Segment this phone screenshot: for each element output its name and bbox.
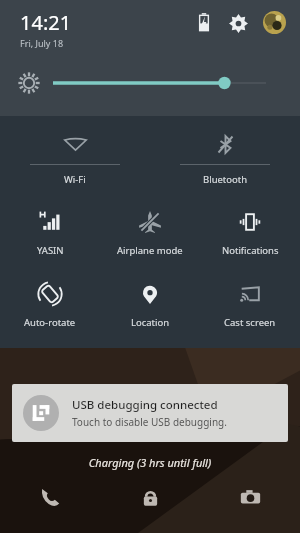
button[interactable]: YASIN [0,198,100,257]
button[interactable]: Settings [224,9,252,37]
staticText: Cast screen [224,316,276,329]
button[interactable]: Unlock [100,477,200,517]
staticText: 14:21 [20,9,72,36]
staticText: Charging (3 hrs until full) [0,455,300,470]
button[interactable]: Airplane mode [100,198,200,257]
staticText: YASIN [37,244,64,257]
button[interactable]: Location [100,270,200,329]
button[interactable]: Auto-rotate [0,270,100,329]
button[interactable]: User profile [261,9,287,35]
staticText: Fri, July 18 [20,37,64,49]
button[interactable]: Notifications [200,198,300,257]
button[interactable]: Brightness [0,62,300,104]
staticText: USB debugging connected [72,397,218,413]
button[interactable]: Bluetooth [150,127,300,186]
button[interactable]: Phone [0,477,100,517]
button[interactable]: Camera [200,477,300,517]
staticText: Touch to disable USB debugging. [72,415,227,429]
button[interactable]: Wi-Fi [0,127,150,186]
staticText: Notifications [222,244,279,257]
staticText: Bluetooth [203,173,248,186]
staticText: Airplane mode [117,244,183,257]
button[interactable]: Cast screen [200,270,300,329]
staticText: Auto-rotate [24,316,76,329]
button[interactable]: Battery charging [191,9,217,35]
button[interactable]: USB debugging connected [12,384,288,442]
staticText: Wi-Fi [64,173,86,186]
staticText: Location [131,316,170,329]
